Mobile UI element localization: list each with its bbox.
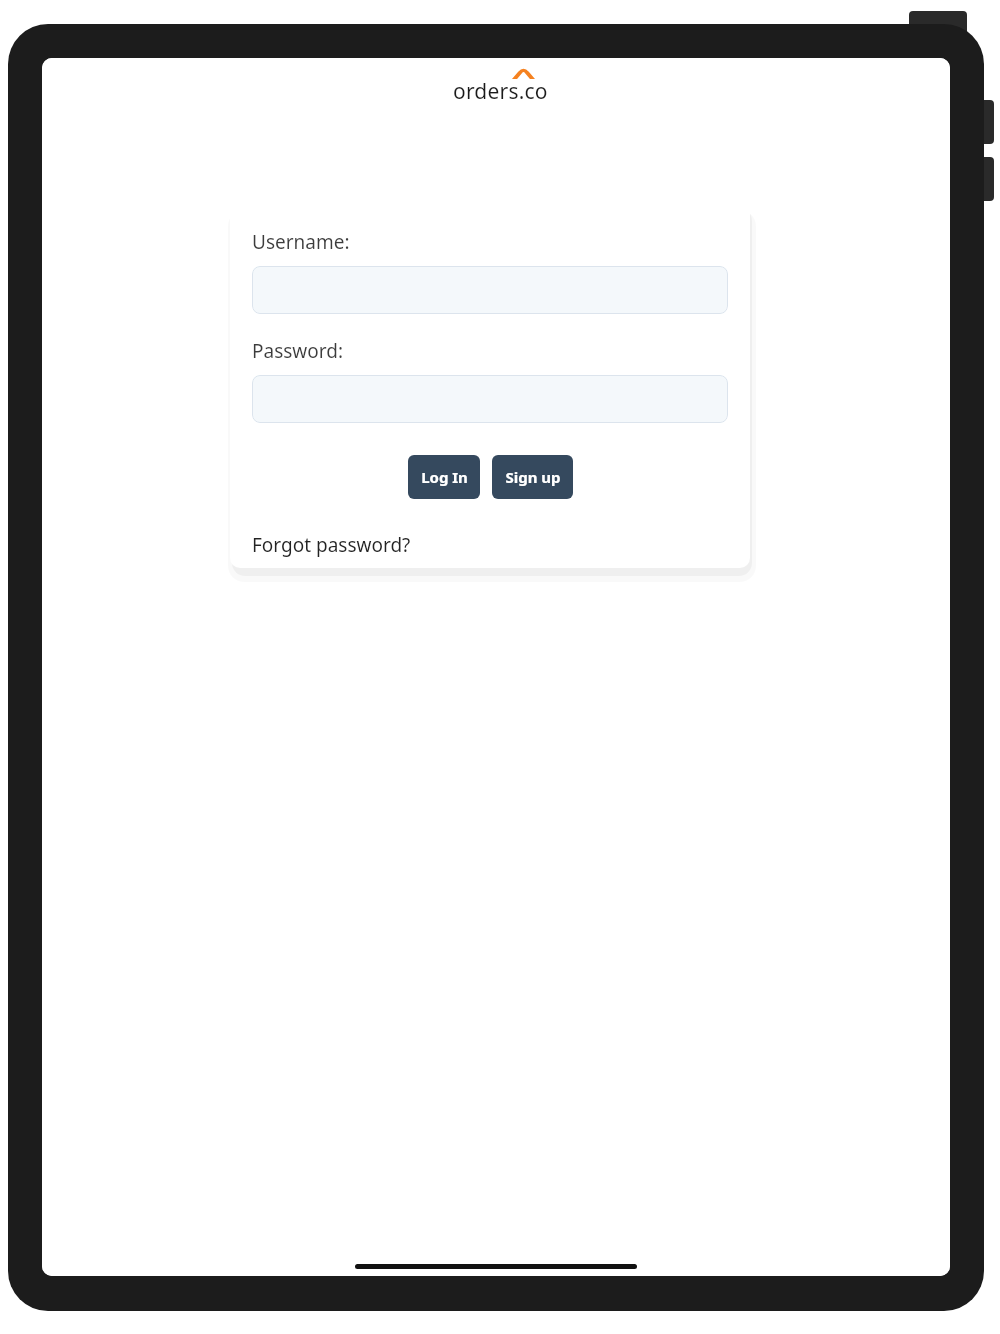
- staticText: orders.co: [453, 77, 548, 106]
- button[interactable]: Log In: [408, 455, 480, 499]
- staticText: Sign up: [505, 467, 561, 487]
- button[interactable]: Password input field: [252, 375, 728, 423]
- button[interactable]: Username input field: [252, 266, 728, 314]
- staticText: Password:: [252, 338, 344, 364]
- button[interactable]: Forgot password?: [252, 532, 411, 558]
- staticText: Username:: [252, 229, 350, 255]
- button[interactable]: orders.co home: [453, 66, 553, 104]
- staticText: Log In: [421, 467, 468, 487]
- button[interactable]: Sign up: [492, 455, 573, 499]
